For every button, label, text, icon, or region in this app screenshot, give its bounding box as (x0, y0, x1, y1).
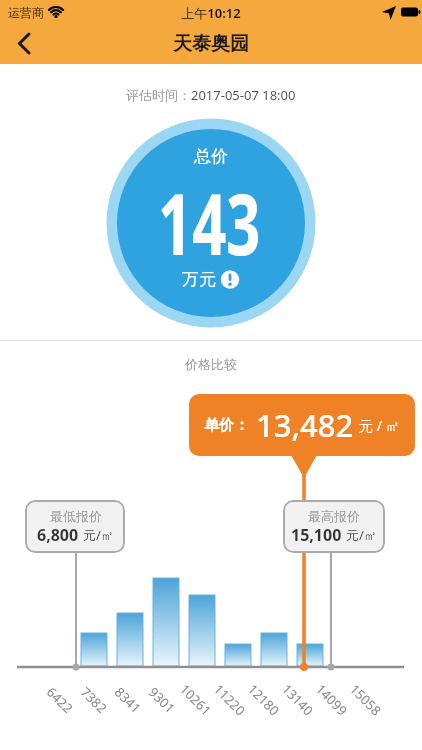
staticText: 8341 (111, 683, 145, 717)
staticText: 14099 (312, 680, 352, 720)
button[interactable]: 最高报价 (283, 500, 385, 553)
staticText: 7382 (77, 683, 111, 717)
staticText: 最低报价 (50, 508, 102, 524)
staticText: 11220 (210, 680, 250, 720)
staticText: 2017-05-07 18:00 (191, 86, 296, 104)
button[interactable]: 天泰奥园 (0, 30, 422, 58)
staticText: 运营商 (8, 5, 44, 20)
staticText: 最高报价 (308, 508, 360, 524)
staticText: 10261 (176, 680, 216, 720)
staticText: 元/㎡ (346, 526, 377, 544)
staticText: 天泰奥园 (173, 32, 249, 56)
staticText: 单价： (204, 416, 249, 435)
staticText: 6422 (43, 683, 77, 717)
staticText: 总价 (194, 146, 228, 167)
staticText: 15058 (346, 680, 386, 720)
staticText: 15,100 (291, 524, 346, 546)
staticText: 上午10:12 (181, 4, 241, 22)
staticText: 万元 (182, 269, 216, 290)
button[interactable]: 最低报价 (25, 500, 125, 553)
staticText: 价格比较 (185, 356, 237, 372)
button[interactable] (6, 28, 46, 60)
staticText: 9301 (145, 683, 179, 717)
staticText: 元/㎡ (83, 526, 114, 544)
button[interactable]: 单价： (189, 394, 415, 456)
staticText: 6,800 (37, 524, 83, 546)
staticText: 143 (158, 165, 261, 275)
staticText: 元 / ㎡ (359, 416, 400, 435)
staticText: 13140 (278, 680, 318, 720)
staticText: 评估时间： (126, 87, 191, 103)
staticText: 13,482 (256, 404, 354, 446)
staticText: 12180 (244, 680, 284, 720)
